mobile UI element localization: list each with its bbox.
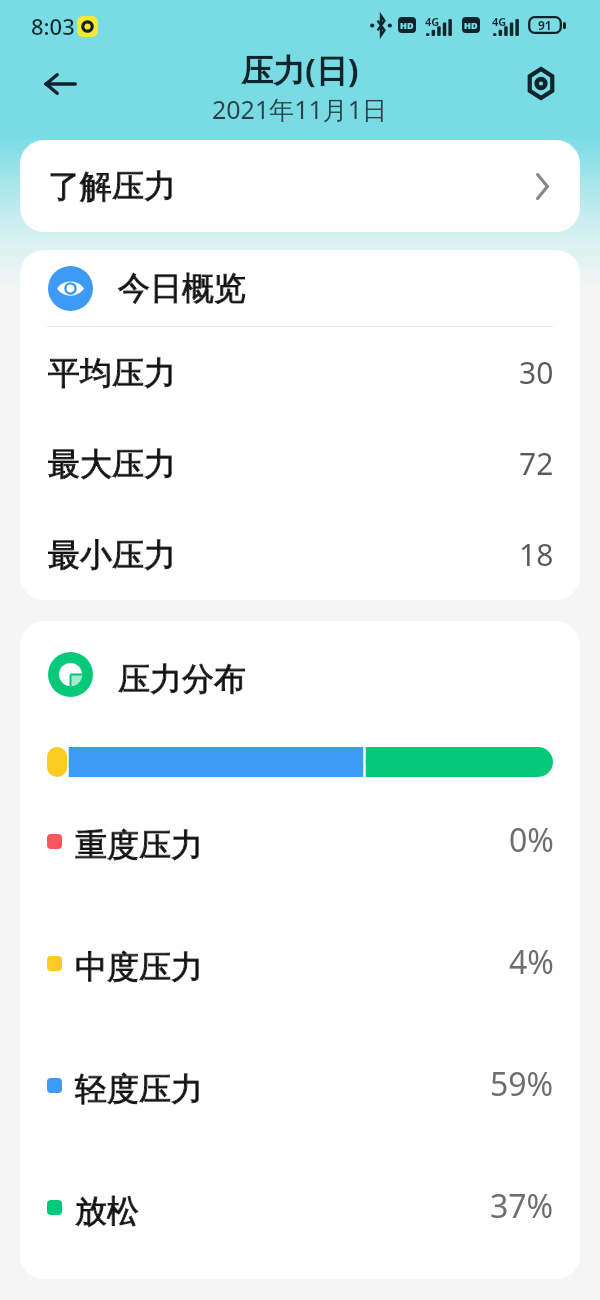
staticText: 压力分布 <box>118 659 246 699</box>
staticText: 18 <box>519 534 554 575</box>
staticText: 了解压力 <box>48 166 176 206</box>
staticText: 最大压力 <box>48 444 176 484</box>
staticText: 轻度压力 <box>75 1069 203 1109</box>
button[interactable]: 轻度压力 <box>20 1028 580 1150</box>
button[interactable]: 了解压力 <box>20 140 580 232</box>
staticText: 最小压力 <box>48 535 176 575</box>
button[interactable]: 重度压力 <box>20 784 580 906</box>
staticText: 今日概览 <box>118 268 246 308</box>
staticText: 4% <box>509 940 554 984</box>
staticText: 中度压力 <box>75 947 203 987</box>
staticText: 重度压力 <box>75 825 203 865</box>
button[interactable]: 最大压力 <box>20 418 580 509</box>
staticText: 平均压力 <box>48 353 176 393</box>
staticText: 轻度压力 <box>75 1069 203 1109</box>
staticText: 最大压力 <box>48 444 176 484</box>
staticText: 30 <box>519 352 554 393</box>
staticText: HD <box>464 19 478 31</box>
staticText: 了解压力 <box>48 166 176 206</box>
staticText: 压力分布 <box>118 659 246 699</box>
staticText: 今日概览 <box>118 268 246 308</box>
button[interactable]: Back <box>37 61 83 107</box>
staticText: 59% <box>490 1062 554 1106</box>
button[interactable]: Settings <box>518 60 564 106</box>
staticText: 4G <box>492 14 507 29</box>
staticText: 重度压力 <box>75 825 203 865</box>
staticText: 2021年11月1日 <box>212 92 388 125</box>
staticText: 最小压力 <box>48 535 176 575</box>
staticText: 8:03 <box>31 11 75 41</box>
staticText: 中度压力 <box>75 947 203 987</box>
staticText: 0% <box>509 818 554 862</box>
staticText: 91 <box>538 17 552 33</box>
staticText: 4G <box>425 14 440 29</box>
button[interactable]: 中度压力 <box>20 906 580 1028</box>
button[interactable]: 放松 <box>20 1150 580 1272</box>
staticText: 37% <box>490 1184 554 1228</box>
staticText: HD <box>400 19 414 31</box>
staticText: 平均压力 <box>48 353 176 393</box>
button[interactable]: 平均压力 <box>20 327 580 418</box>
staticText: 放松 <box>75 1191 139 1231</box>
staticText: 72 <box>519 443 554 484</box>
staticText: 压力(日) <box>241 48 359 92</box>
button[interactable]: 最小压力 <box>20 509 580 600</box>
staticText: 放松 <box>75 1191 139 1231</box>
